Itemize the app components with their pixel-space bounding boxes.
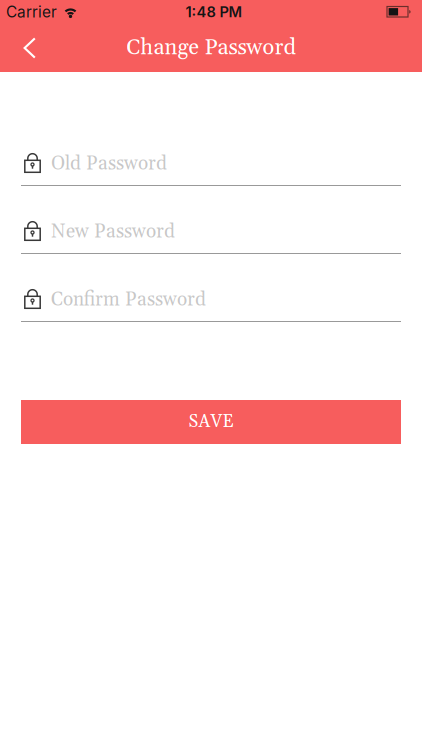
staticText: Carrier: [6, 3, 57, 21]
button[interactable]: Confirm Password: [21, 287, 401, 322]
staticText: Old Password: [51, 152, 167, 176]
button[interactable]: Back: [0, 24, 36, 71]
staticText: Change Password: [126, 34, 295, 62]
button[interactable]: SAVE: [21, 400, 401, 444]
staticText: Confirm Password: [51, 288, 206, 312]
staticText: New Password: [51, 220, 175, 244]
button[interactable]: Old Password: [21, 151, 401, 186]
staticText: 1:48 PM: [185, 3, 242, 21]
staticText: SAVE: [188, 411, 233, 433]
button[interactable]: New Password: [21, 219, 401, 254]
